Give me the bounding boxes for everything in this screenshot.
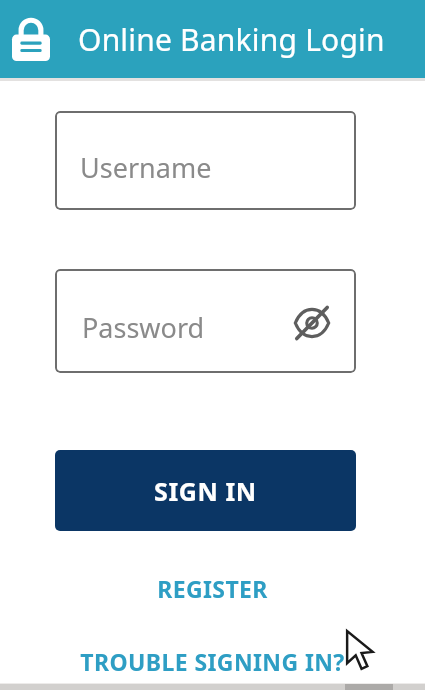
button[interactable]: Password <box>55 269 356 373</box>
staticText: Online Banking Login <box>78 19 385 60</box>
button[interactable]: Show password <box>290 301 334 345</box>
button[interactable]: SIGN IN <box>55 450 356 531</box>
staticText: REGISTER <box>157 573 268 604</box>
staticText: Username <box>80 149 212 186</box>
button[interactable]: Username <box>55 111 356 210</box>
button[interactable]: TROUBLE SIGNING IN? <box>72 642 353 681</box>
button[interactable]: REGISTER <box>149 569 276 608</box>
other: Secure login <box>12 17 50 61</box>
staticText: SIGN IN <box>154 474 257 508</box>
staticText: TROUBLE SIGNING IN? <box>80 646 345 677</box>
staticText: Password <box>82 309 205 346</box>
